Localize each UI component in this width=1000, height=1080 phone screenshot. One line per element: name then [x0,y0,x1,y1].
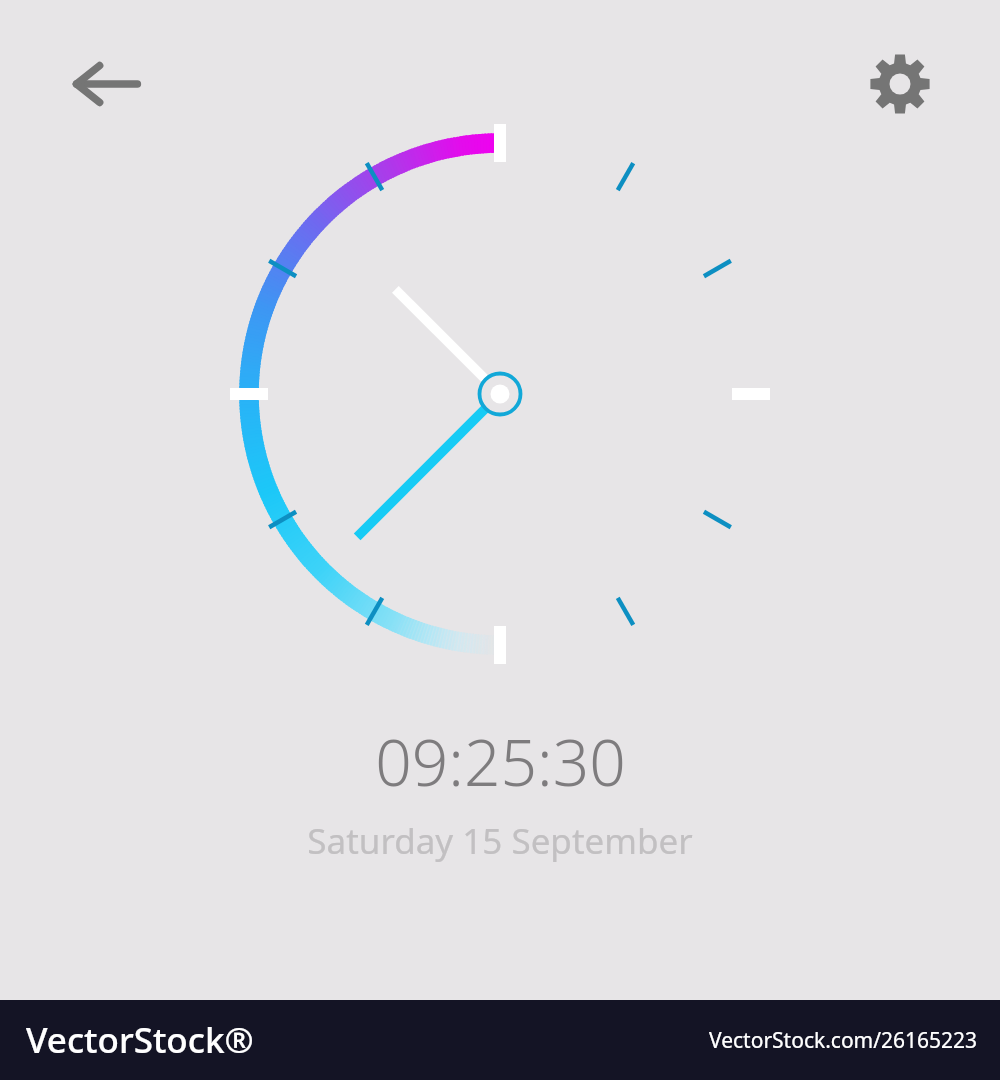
staticText: VectorStock.com/26165223 [709,1026,978,1055]
staticText: Saturday 15 September [307,817,693,865]
staticText: 09:25:30 [375,718,626,805]
staticText: VectorStock® [26,1016,254,1064]
button[interactable]: Back [60,44,152,124]
button[interactable]: Settings [858,42,942,126]
